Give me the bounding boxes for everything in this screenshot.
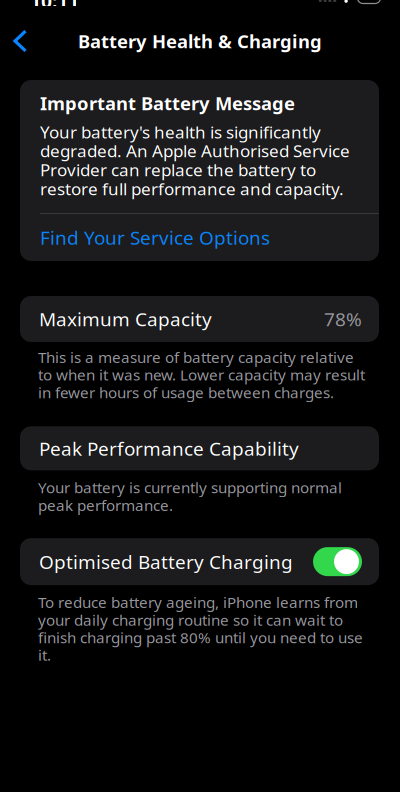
staticText: Peak Performance Capability xyxy=(39,436,299,461)
staticText: Your battery's health is significantly d… xyxy=(40,120,350,200)
staticText: Your battery is currently supporting nor… xyxy=(38,477,342,515)
staticText: Important Battery Message xyxy=(40,91,295,115)
staticText: Battery Health & Charging xyxy=(78,29,322,53)
staticText: Find Your Service Options xyxy=(40,225,270,250)
staticText: 78% xyxy=(324,306,362,331)
staticText: Maximum Capacity xyxy=(39,306,212,331)
staticText: To reduce battery ageing, iPhone learns … xyxy=(38,592,363,665)
button[interactable]: Back xyxy=(0,19,40,63)
staticText: Optimised Battery Charging xyxy=(39,549,293,574)
button[interactable]: Find Your Service Options xyxy=(40,214,359,261)
staticText: 10:11 xyxy=(30,0,79,14)
staticText: This is a measure of battery capacity re… xyxy=(38,347,365,402)
button[interactable]: Optimised Battery Charging xyxy=(313,547,362,576)
